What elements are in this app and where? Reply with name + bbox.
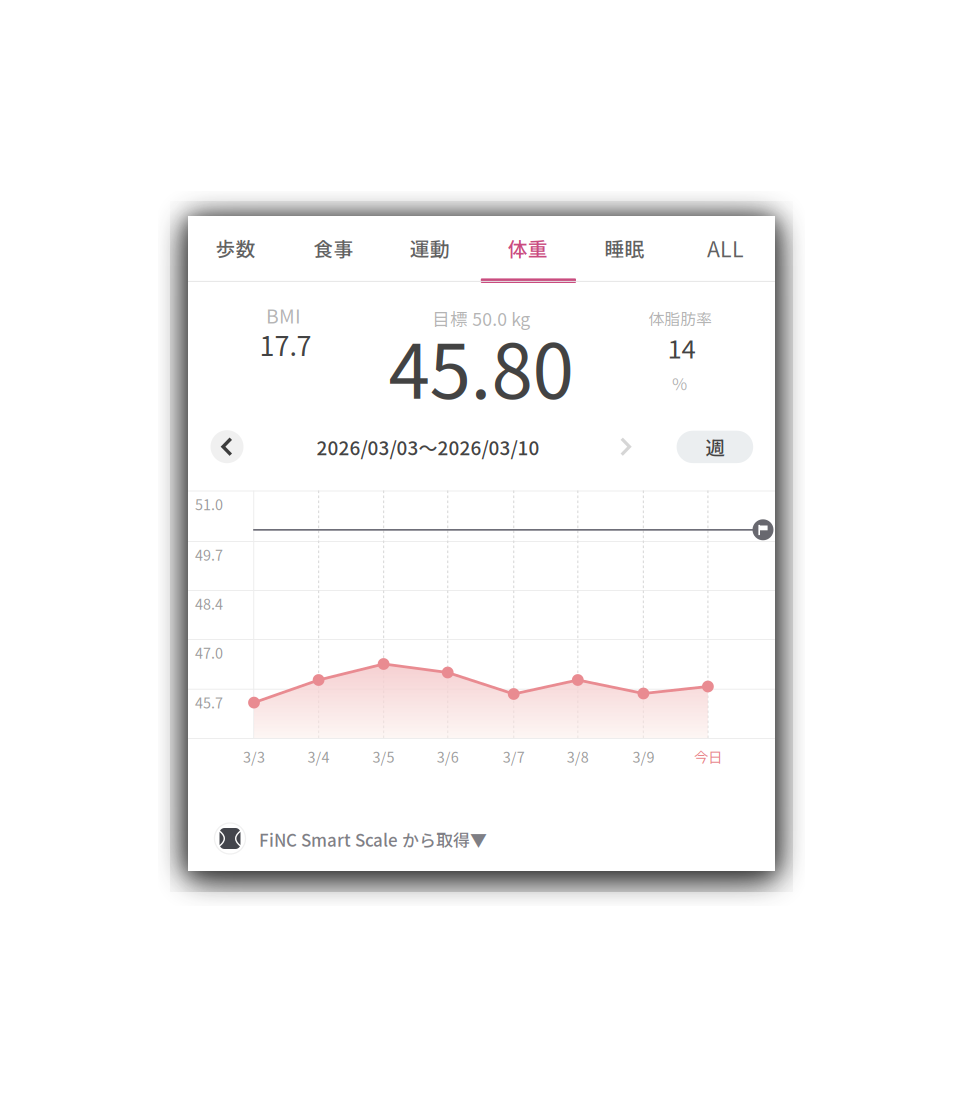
- staticText: 2026/03/03〜2026/03/10: [316, 433, 539, 461]
- staticText: 体重: [508, 234, 548, 262]
- staticText: 3/7: [503, 746, 525, 767]
- button[interactable]: Next week: [609, 430, 642, 463]
- staticText: 3/9: [632, 746, 654, 767]
- staticText: FiNC Smart Scale から取得▼: [259, 827, 487, 852]
- staticText: 歩数: [215, 234, 255, 262]
- staticText: 3/4: [308, 746, 330, 767]
- staticText: ALL: [707, 233, 744, 263]
- button[interactable]: ALL: [676, 216, 774, 280]
- staticText: 今日: [694, 746, 722, 767]
- button[interactable]: 体重: [479, 216, 577, 280]
- staticText: 食事: [313, 234, 353, 262]
- staticText: 目標 50.0 kg: [432, 306, 530, 331]
- staticText: 51.0: [195, 494, 223, 514]
- button[interactable]: Previous week: [210, 430, 243, 463]
- button[interactable]: FiNC Smart Scale から取得: [188, 811, 775, 871]
- staticText: 45.80: [388, 312, 573, 420]
- staticText: 45.7: [195, 692, 223, 713]
- staticText: %: [672, 371, 687, 395]
- button[interactable]: 食事: [284, 216, 382, 280]
- staticText: 47.0: [195, 642, 223, 663]
- staticText: 3/6: [437, 746, 459, 767]
- staticText: 3/5: [373, 746, 395, 767]
- staticText: 14: [667, 329, 695, 366]
- staticText: BMI: [266, 301, 301, 329]
- staticText: 3/3: [243, 746, 265, 767]
- staticText: 49.7: [195, 544, 223, 565]
- staticText: 3/8: [567, 746, 589, 767]
- button[interactable]: 週: [677, 431, 753, 463]
- staticText: 17.7: [259, 325, 311, 364]
- staticText: 運動: [410, 234, 450, 262]
- staticText: 週: [705, 433, 724, 461]
- staticText: 体脂肪率: [648, 306, 712, 329]
- staticText: 睡眠: [605, 234, 645, 262]
- button[interactable]: 歩数: [186, 216, 284, 280]
- button[interactable]: 運動: [381, 216, 479, 280]
- button[interactable]: 睡眠: [576, 216, 674, 280]
- staticText: 48.4: [195, 593, 223, 614]
